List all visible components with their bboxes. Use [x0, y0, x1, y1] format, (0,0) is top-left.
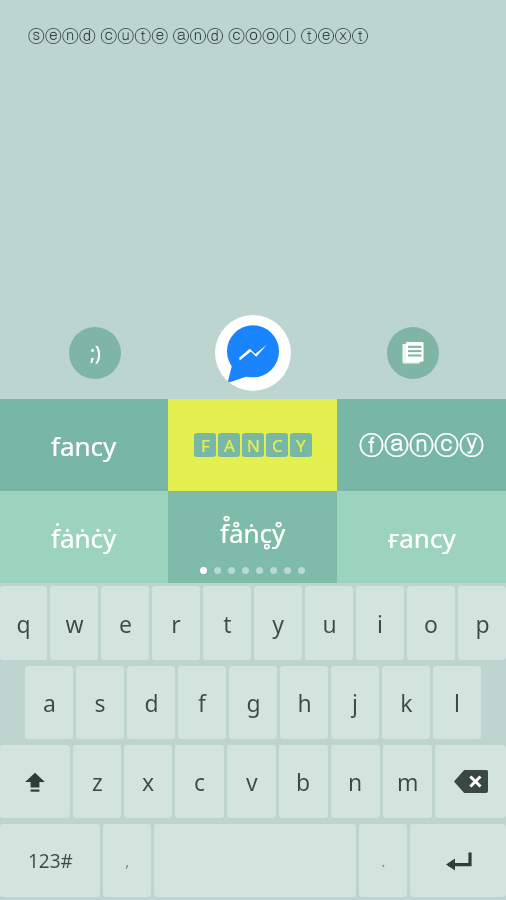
staticText: n: [348, 766, 363, 797]
staticText: A: [224, 434, 235, 457]
button[interactable]: h: [280, 666, 328, 739]
staticText: p: [475, 608, 490, 639]
staticText: ғancy: [388, 520, 456, 555]
button[interactable]: ⓕⓐⓝⓒⓨ: [337, 399, 506, 491]
staticText: j: [352, 687, 358, 718]
staticText: s: [94, 687, 106, 718]
staticText: x: [142, 766, 155, 797]
button[interactable]: n: [331, 745, 380, 818]
staticText: F: [201, 434, 210, 457]
button[interactable]: Enter: [410, 824, 506, 897]
staticText: l: [454, 687, 460, 718]
staticText: r: [171, 608, 181, 639]
button[interactable]: g: [229, 666, 277, 739]
staticText: e: [119, 608, 132, 639]
staticText: z: [92, 766, 103, 797]
staticText: h: [297, 687, 312, 718]
button[interactable]: i: [356, 586, 404, 660]
staticText: f: [198, 687, 206, 718]
staticText: b: [296, 766, 311, 797]
staticText: y: [272, 608, 284, 639]
staticText: u: [322, 608, 337, 639]
staticText: ⓢⓔⓝⓓ ⓒⓤⓣⓔ ⓐⓝⓓ ⓒⓞⓞⓛ ⓣⓔⓧⓣ: [28, 24, 369, 47]
button[interactable]: u: [305, 586, 353, 660]
button[interactable]: p: [458, 586, 506, 660]
staticText: w: [65, 608, 84, 639]
button[interactable]: w: [50, 586, 98, 660]
staticText: m: [397, 766, 419, 797]
staticText: o: [424, 608, 438, 639]
button[interactable]: z: [73, 745, 121, 818]
button[interactable]: b: [279, 745, 328, 818]
staticText: 123#: [28, 848, 73, 874]
button[interactable]: Saved texts: [387, 327, 439, 379]
staticText: t: [223, 608, 232, 639]
button[interactable]: fancy: [0, 399, 168, 491]
button[interactable]: e: [101, 586, 149, 660]
button[interactable]: a: [25, 666, 73, 739]
button[interactable]: v: [227, 745, 276, 818]
button[interactable]: d: [127, 666, 175, 739]
staticText: q: [16, 608, 31, 639]
staticText: f̊åṅc̥ẙ: [220, 515, 286, 550]
button[interactable]: t: [203, 586, 251, 660]
button[interactable]: f̊åṅc̥ẙ: [168, 491, 337, 583]
button[interactable]: j: [331, 666, 379, 739]
button[interactable]: o: [407, 586, 455, 660]
staticText: Y: [296, 434, 306, 457]
staticText: N: [247, 434, 260, 457]
staticText: c: [194, 766, 206, 797]
staticText: fancy: [51, 428, 117, 463]
button[interactable]: r: [152, 586, 200, 660]
button[interactable]: Shift: [0, 745, 70, 818]
button[interactable]: F: [168, 399, 337, 491]
staticText: a: [43, 687, 56, 718]
staticText: i: [377, 608, 383, 639]
button[interactable]: ḟȧṅċẏ: [0, 491, 168, 583]
button[interactable]: s: [76, 666, 124, 739]
staticText: ḟȧṅċẏ: [51, 520, 117, 555]
button[interactable]: ғancy: [337, 491, 506, 583]
button[interactable]: y: [254, 586, 302, 660]
button[interactable]: f: [178, 666, 226, 739]
staticText: ;): [90, 340, 101, 366]
button[interactable]: Send to Messenger: [215, 315, 291, 391]
staticText: k: [400, 687, 413, 718]
staticText: ,: [125, 849, 130, 872]
button[interactable]: Emoticons: [69, 327, 121, 379]
staticText: g: [246, 687, 261, 718]
staticText: .: [381, 849, 386, 872]
button[interactable]: x: [124, 745, 172, 818]
staticText: C: [272, 434, 283, 457]
button[interactable]: k: [382, 666, 430, 739]
staticText: v: [246, 766, 258, 797]
button[interactable]: c: [175, 745, 224, 818]
button[interactable]: l: [433, 666, 481, 739]
staticText: d: [144, 687, 159, 718]
button[interactable]: 123#: [0, 824, 100, 897]
button[interactable]: q: [0, 586, 47, 660]
button[interactable]: Backspace: [435, 745, 506, 818]
staticText: ⓕⓐⓝⓒⓨ: [359, 430, 484, 461]
button[interactable]: m: [383, 745, 432, 818]
